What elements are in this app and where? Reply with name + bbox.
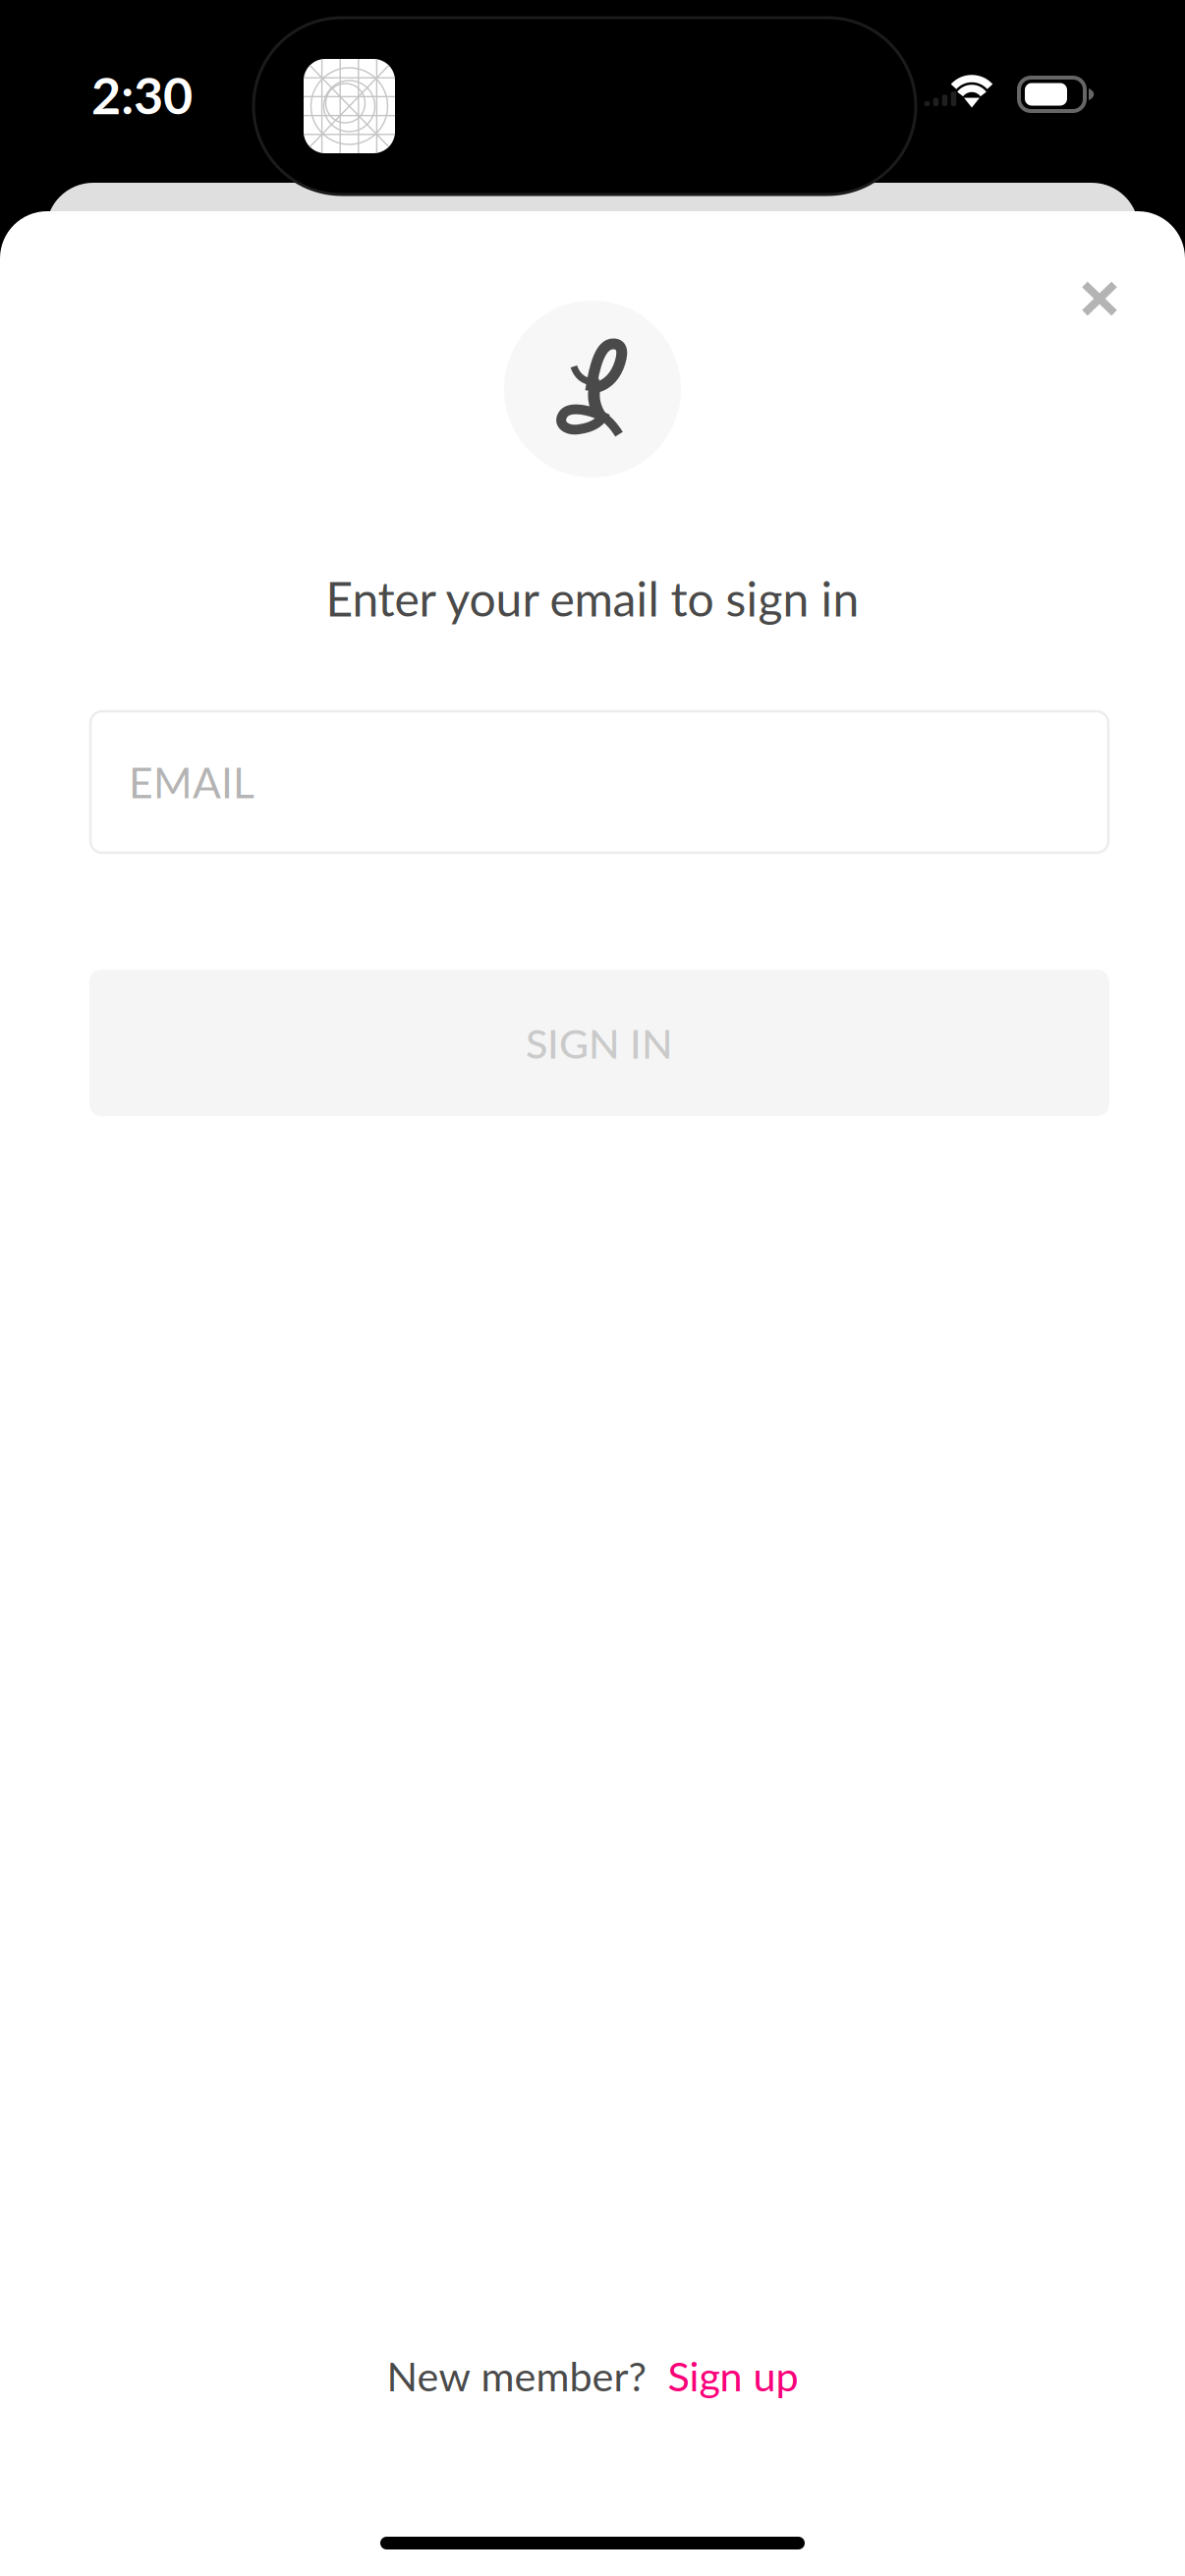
button[interactable]: EMAIL	[90, 711, 1108, 853]
staticText: Enter your email to sign in	[326, 570, 859, 627]
staticText: SIGN IN	[526, 1019, 673, 1067]
button[interactable]: Sign up	[668, 2351, 798, 2400]
button[interactable]: SIGN IN	[89, 970, 1109, 1116]
staticText: EMAIL	[129, 757, 254, 807]
staticText: 2:30	[91, 64, 193, 125]
button[interactable]: Close	[1041, 240, 1158, 358]
staticText: Sign up	[668, 2351, 798, 2400]
staticText: New member?	[387, 2351, 646, 2400]
